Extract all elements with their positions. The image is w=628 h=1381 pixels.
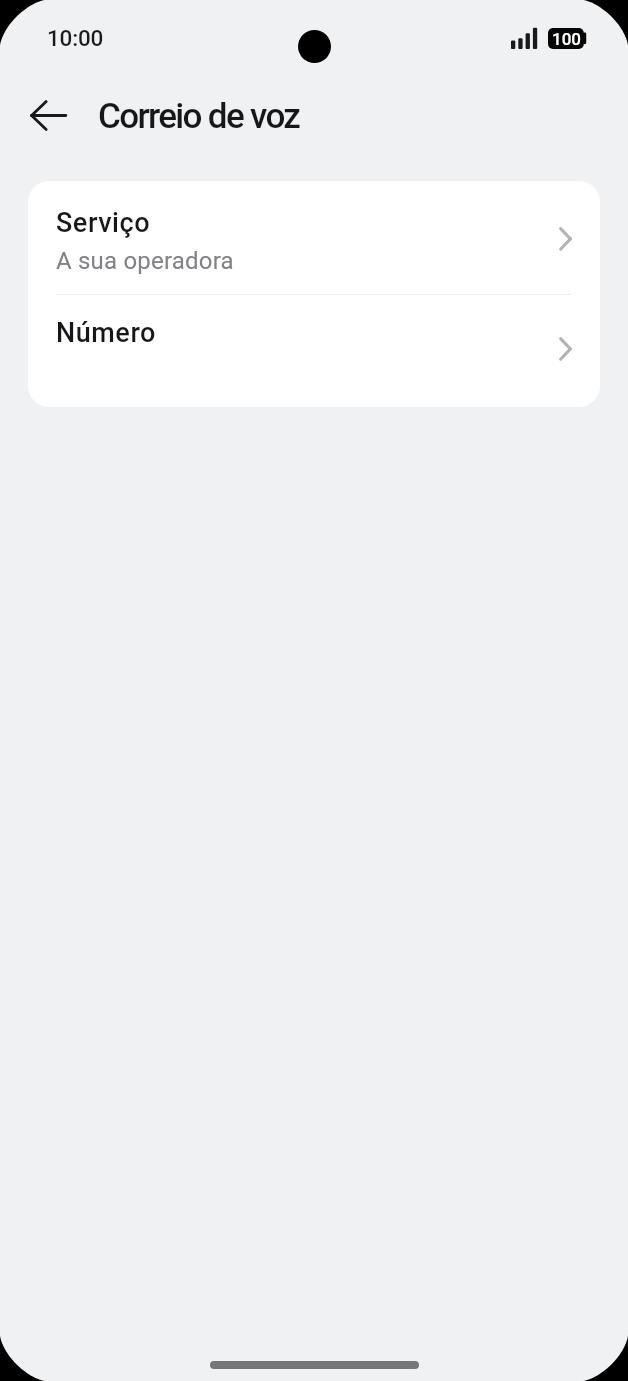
staticText: 10:00 [47,25,104,51]
button[interactable]: Número [28,295,600,407]
staticText: A sua operadora [56,247,234,275]
staticText: Número [56,317,156,349]
staticText: Serviço [56,207,151,239]
button[interactable]: Back [15,82,82,149]
staticText: Correio de voz [98,96,300,137]
staticText: 100 [552,29,581,49]
button[interactable]: Serviço [28,181,600,294]
